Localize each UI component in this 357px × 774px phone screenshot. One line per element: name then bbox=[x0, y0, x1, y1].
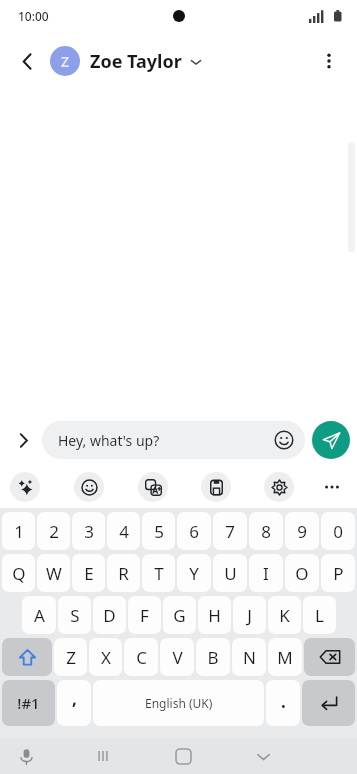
staticText: 10:00 bbox=[18, 8, 49, 24]
button[interactable]: Zoe Taylor bbox=[90, 49, 202, 74]
staticText: Z bbox=[61, 52, 70, 71]
button[interactable]: A bbox=[22, 596, 56, 634]
staticText: 5 bbox=[154, 520, 164, 543]
button[interactable]: Expand options bbox=[4, 421, 42, 459]
button[interactable]: F bbox=[128, 596, 161, 634]
button[interactable]: Settings bbox=[264, 472, 294, 502]
button[interactable]: Q bbox=[2, 554, 35, 592]
button[interactable]: Send bbox=[312, 421, 350, 459]
button[interactable]: More options bbox=[309, 41, 349, 81]
button[interactable]: Recents bbox=[83, 738, 123, 774]
button[interactable]: 7 bbox=[213, 512, 247, 550]
staticText: E bbox=[84, 562, 94, 585]
staticText: T bbox=[154, 562, 164, 585]
staticText: Q bbox=[12, 562, 26, 585]
staticText: M bbox=[277, 646, 293, 669]
button[interactable]: L bbox=[303, 596, 336, 634]
button[interactable]: . bbox=[266, 680, 300, 726]
staticText: B bbox=[207, 646, 219, 669]
button[interactable]: More bbox=[317, 472, 347, 502]
button[interactable]: D bbox=[93, 596, 126, 634]
staticText: 8 bbox=[261, 520, 271, 543]
staticText: C bbox=[136, 646, 147, 669]
button[interactable]: AI suggestions bbox=[10, 472, 40, 502]
staticText: G bbox=[173, 604, 186, 627]
button[interactable]: Emoji bbox=[74, 472, 104, 502]
staticText: K bbox=[279, 604, 290, 627]
button[interactable]: B bbox=[196, 638, 230, 676]
staticText: O bbox=[295, 562, 309, 585]
button[interactable]: Back bbox=[6, 40, 48, 82]
staticText: I bbox=[263, 562, 269, 585]
button[interactable]: 3 bbox=[72, 512, 105, 550]
button[interactable]: N bbox=[232, 638, 266, 676]
button[interactable]: Clipboard bbox=[201, 472, 231, 502]
button[interactable]: Shift bbox=[2, 638, 52, 676]
button[interactable]: 0 bbox=[321, 512, 355, 550]
button[interactable]: Home bbox=[163, 738, 203, 774]
staticText: Y bbox=[189, 562, 199, 585]
button[interactable]: Y bbox=[177, 554, 211, 592]
button[interactable]: P bbox=[321, 554, 355, 592]
staticText: S bbox=[70, 604, 80, 627]
button[interactable]: !#1 bbox=[2, 680, 55, 726]
staticText: Hey, what's up? bbox=[58, 431, 272, 450]
staticText: J bbox=[247, 604, 252, 627]
button[interactable]: 2 bbox=[37, 512, 70, 550]
button[interactable]: Translate bbox=[138, 472, 168, 502]
button[interactable]: C bbox=[124, 638, 158, 676]
staticText: F bbox=[140, 604, 149, 627]
staticText: 1 bbox=[14, 520, 24, 543]
staticText: 7 bbox=[225, 520, 235, 543]
button[interactable]: X bbox=[89, 638, 122, 676]
button[interactable]: E bbox=[72, 554, 105, 592]
button[interactable]: Hide keyboard bbox=[243, 738, 283, 774]
staticText: Z bbox=[66, 646, 76, 669]
button[interactable]: G bbox=[163, 596, 196, 634]
staticText: N bbox=[243, 646, 256, 669]
button[interactable]: 1 bbox=[2, 512, 35, 550]
button[interactable]: 4 bbox=[107, 512, 140, 550]
staticText: 9 bbox=[297, 520, 307, 543]
staticText: 0 bbox=[333, 520, 343, 543]
button[interactable]: 8 bbox=[249, 512, 283, 550]
button[interactable]: V bbox=[160, 638, 194, 676]
button[interactable]: 6 bbox=[177, 512, 211, 550]
button[interactable]: Hey, what's up? bbox=[42, 421, 305, 459]
staticText: 6 bbox=[189, 520, 199, 543]
button[interactable]: O bbox=[285, 554, 319, 592]
staticText: P bbox=[333, 562, 344, 585]
staticText: 2 bbox=[49, 520, 59, 543]
button[interactable]: , bbox=[57, 680, 91, 726]
button[interactable]: Emoji bbox=[272, 428, 296, 452]
button[interactable]: J bbox=[233, 596, 266, 634]
button[interactable]: T bbox=[142, 554, 175, 592]
button[interactable]: H bbox=[198, 596, 231, 634]
button[interactable]: Voice input bbox=[10, 740, 42, 772]
staticText: , bbox=[72, 687, 77, 710]
button[interactable]: English (UK) bbox=[93, 680, 264, 726]
staticText: A bbox=[34, 604, 45, 627]
button[interactable]: I bbox=[249, 554, 283, 592]
button[interactable]: Z bbox=[50, 46, 80, 76]
staticText: . bbox=[281, 690, 286, 713]
staticText: L bbox=[315, 604, 324, 627]
button[interactable]: 9 bbox=[285, 512, 319, 550]
staticText: H bbox=[208, 604, 221, 627]
staticText: V bbox=[172, 646, 183, 669]
button[interactable]: U bbox=[213, 554, 247, 592]
staticText: R bbox=[118, 562, 129, 585]
button[interactable]: W bbox=[37, 554, 70, 592]
button[interactable]: M bbox=[268, 638, 302, 676]
button[interactable]: R bbox=[107, 554, 140, 592]
button[interactable]: S bbox=[58, 596, 91, 634]
button[interactable]: Enter bbox=[302, 680, 355, 726]
button[interactable]: K bbox=[268, 596, 301, 634]
button[interactable]: Z bbox=[54, 638, 87, 676]
staticText: D bbox=[103, 604, 116, 627]
staticText: X bbox=[101, 646, 111, 669]
button[interactable]: 5 bbox=[142, 512, 175, 550]
staticText: !#1 bbox=[17, 693, 40, 713]
button[interactable]: Backspace bbox=[304, 638, 355, 676]
staticText: 3 bbox=[84, 520, 94, 543]
